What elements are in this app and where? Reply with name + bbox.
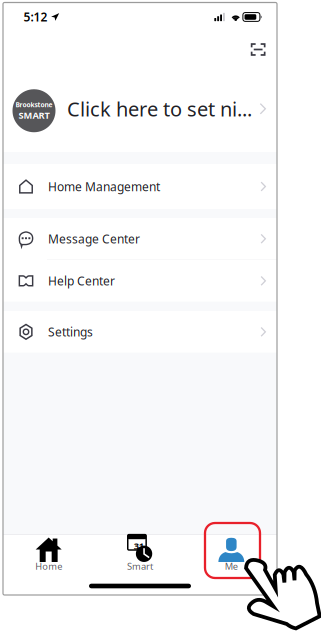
button[interactable]: Settings [3, 311, 277, 353]
staticText: Home [35, 560, 62, 572]
staticText: Smart [127, 560, 153, 572]
staticText: Help Center [48, 273, 115, 289]
staticText: Home Management [48, 178, 160, 194]
staticText: Me [225, 560, 238, 572]
staticText: Settings [48, 324, 93, 340]
button[interactable]: Home [3, 535, 94, 577]
staticText: Brookstone [15, 100, 52, 109]
staticText: Click here to set ni... [67, 95, 252, 122]
button[interactable]: Brookstone [3, 65, 277, 152]
button[interactable]: 31 [94, 535, 186, 577]
button[interactable]: Me [186, 535, 277, 577]
button[interactable]: Home Management [3, 164, 277, 209]
staticText: Message Center [48, 231, 140, 247]
button[interactable]: Message Center [3, 218, 277, 259]
staticText: 31 [134, 540, 144, 552]
button[interactable]: Scan QR code [242, 35, 274, 64]
staticText: 5:12 [23, 9, 47, 25]
button[interactable]: Help Center [3, 260, 277, 302]
staticText: SMART [18, 109, 49, 121]
